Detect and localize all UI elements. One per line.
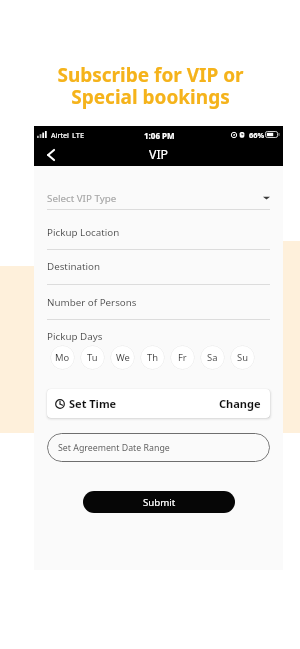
staticText: Th [147,351,159,364]
button[interactable]: Sa [200,345,225,370]
button[interactable]: Set Agreement Date Range [47,433,270,462]
button[interactable]: We [110,345,135,370]
button[interactable]: Th [140,345,165,370]
staticText: 66% [249,130,265,140]
staticText: Fr [178,351,187,364]
staticText: Special bookings [71,84,230,110]
staticText: Set Time [69,396,117,411]
staticText: LTE [72,130,85,140]
staticText: Submit [143,496,176,509]
staticText: Pickup Days [47,330,103,343]
staticText: 1:06 PM [144,130,175,141]
staticText: Change [219,396,261,411]
staticText: Tu [87,351,98,364]
button[interactable]: Set Time [47,389,270,418]
staticText: Destination [47,260,101,273]
staticText: Set Agreement Date Range [58,442,170,454]
staticText: We [116,351,130,364]
staticText: Su [237,351,248,364]
staticText: VIP [149,146,168,163]
button[interactable]: Tu [80,345,105,370]
staticText: Select VIP Type [47,192,117,205]
button[interactable]: Pickup Location [47,223,270,241]
button[interactable]: Fr [170,345,195,370]
staticText: Mo [55,351,70,364]
button[interactable]: Back [42,146,59,163]
button[interactable]: Destination [47,257,270,275]
button[interactable]: Su [230,345,255,370]
button[interactable]: Submit [83,491,235,513]
staticText: Subscribe for VIP or [57,62,244,88]
staticText: Airtel [51,130,69,140]
staticText: Sa [207,351,218,364]
button[interactable]: Number of Persons [47,293,270,311]
button[interactable]: Mo [50,345,75,370]
button[interactable]: Select VIP Type [47,189,270,207]
staticText: Pickup Location [47,226,120,239]
staticText: Number of Persons [47,296,137,309]
